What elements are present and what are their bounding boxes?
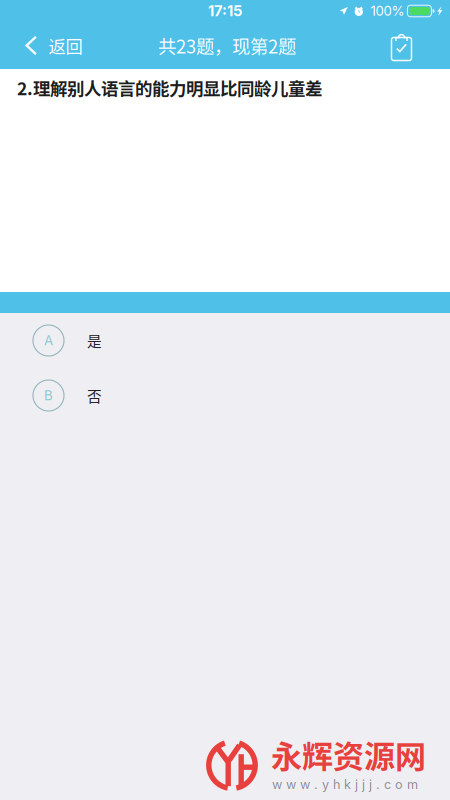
staticText: 永辉资源网 xyxy=(271,732,426,777)
staticText: 17:15 xyxy=(208,2,242,20)
button[interactable]: 答题卡 xyxy=(381,22,450,69)
staticText: A xyxy=(44,332,53,348)
staticText: w w w . y h k j j j . c o m xyxy=(272,777,418,792)
staticText: 是 xyxy=(87,330,102,351)
staticText: 返回 xyxy=(48,33,82,58)
button[interactable]: B xyxy=(0,368,450,423)
button[interactable]: A xyxy=(0,313,450,368)
staticText: B xyxy=(44,387,53,403)
staticText: 2.理解别人语言的能力明显比同龄儿童差 xyxy=(17,75,322,100)
staticText: 共23题，现第2题 xyxy=(158,32,296,59)
button[interactable]: 返回 xyxy=(0,22,94,69)
staticText: 100% xyxy=(370,3,404,19)
staticText: 否 xyxy=(87,385,102,406)
